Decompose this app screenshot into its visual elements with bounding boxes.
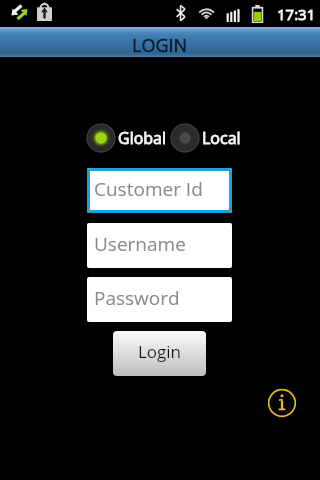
staticText: 17:31 (277, 4, 316, 24)
button[interactable]: Login (113, 331, 206, 376)
staticText: LOGIN (132, 33, 188, 58)
staticText: Local (202, 127, 241, 149)
button[interactable]: Password (87, 277, 232, 322)
button[interactable]: Information (264, 385, 300, 421)
button[interactable]: Local (170, 123, 241, 153)
staticText: Login (138, 340, 182, 363)
button[interactable]: Global (86, 123, 167, 153)
button[interactable]: Customer Id (87, 168, 232, 213)
staticText: Password (94, 285, 180, 311)
button[interactable]: Username (87, 223, 232, 268)
staticText: Username (94, 231, 186, 257)
staticText: Global (118, 127, 167, 149)
staticText: Customer Id (94, 176, 203, 202)
